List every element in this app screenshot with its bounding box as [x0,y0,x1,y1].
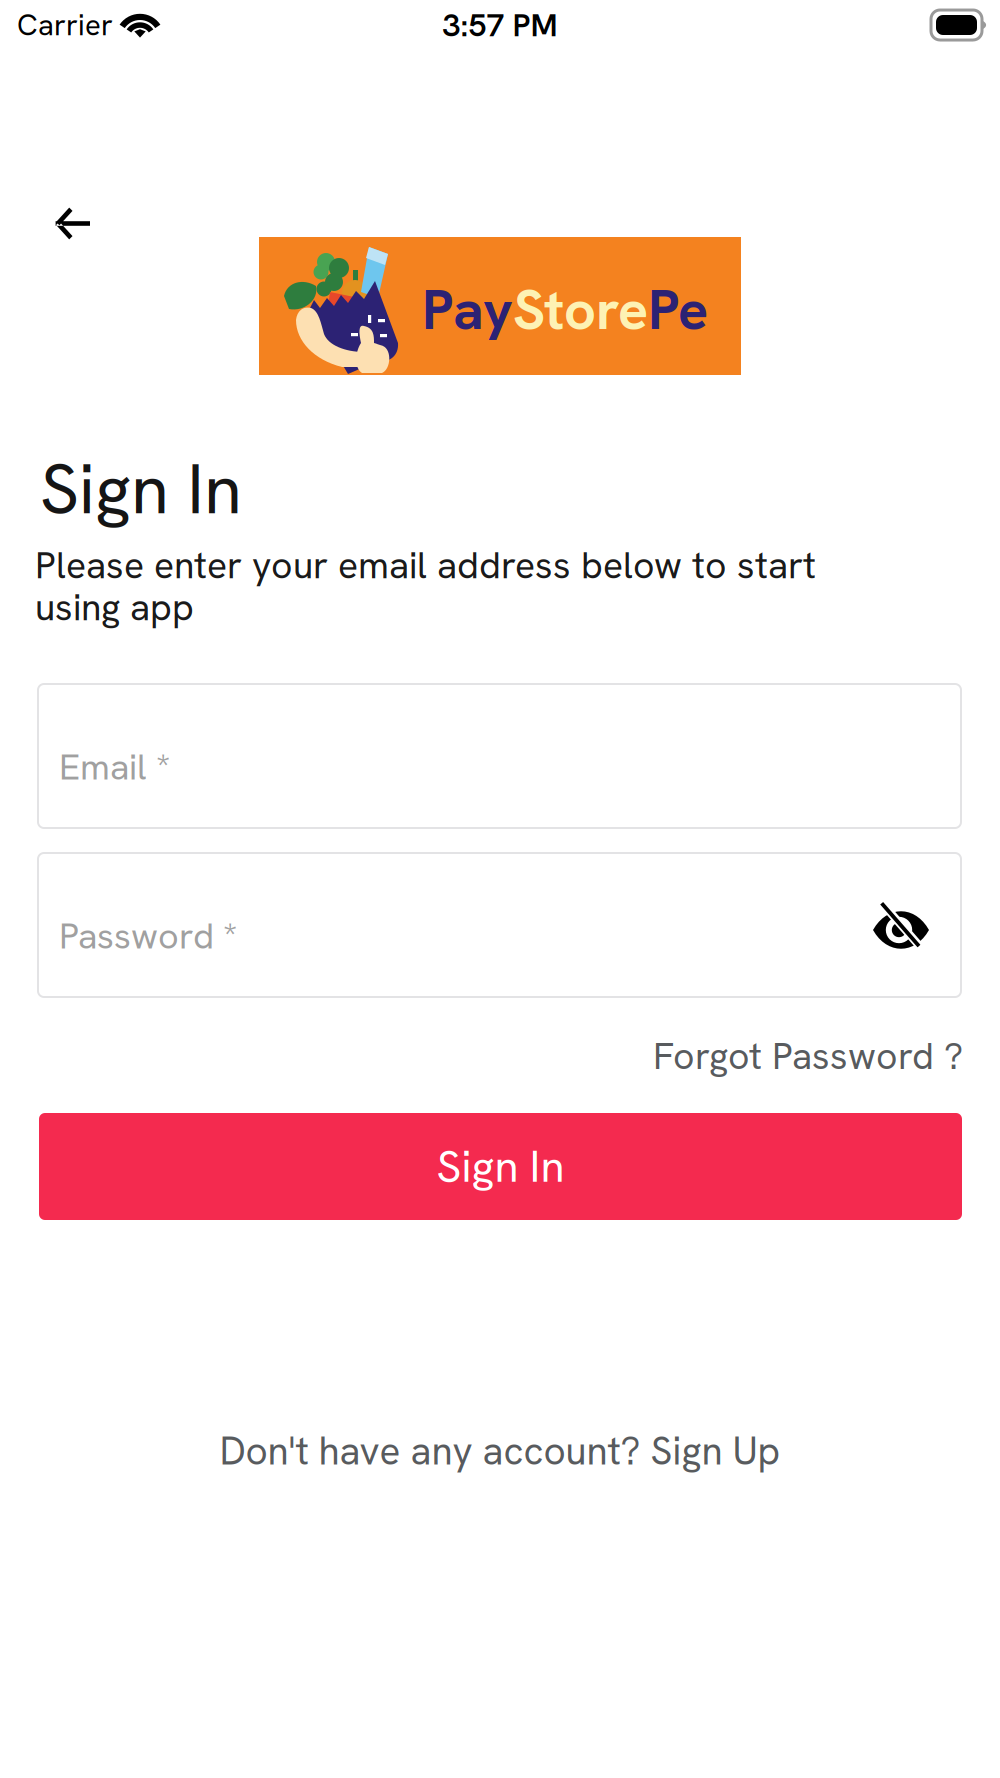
button[interactable]: Show password [865,899,935,951]
button[interactable]: Sign In [39,1113,962,1220]
staticText: Sign In [436,1138,564,1195]
staticText: Forgot Password ? [653,1032,963,1080]
staticText: Email * [59,743,170,790]
staticText: Please enter your email address below to… [35,541,816,590]
button[interactable]: Forgot Password ? [38,1032,963,1080]
staticText: Sign In [40,444,242,534]
staticText: Don't have any account? Sign Up [219,1426,780,1476]
button[interactable]: Back [37,191,107,256]
staticText: 3:57 PM [442,4,557,46]
staticText: Pe [648,273,708,346]
staticText: Pay [422,273,513,346]
staticText: Store [513,273,648,346]
staticText: Carrier [17,6,113,44]
button[interactable]: Don't have any account? Sign Up [0,1426,1000,1476]
staticText: using app [35,583,194,632]
staticText: Password * [59,912,237,959]
